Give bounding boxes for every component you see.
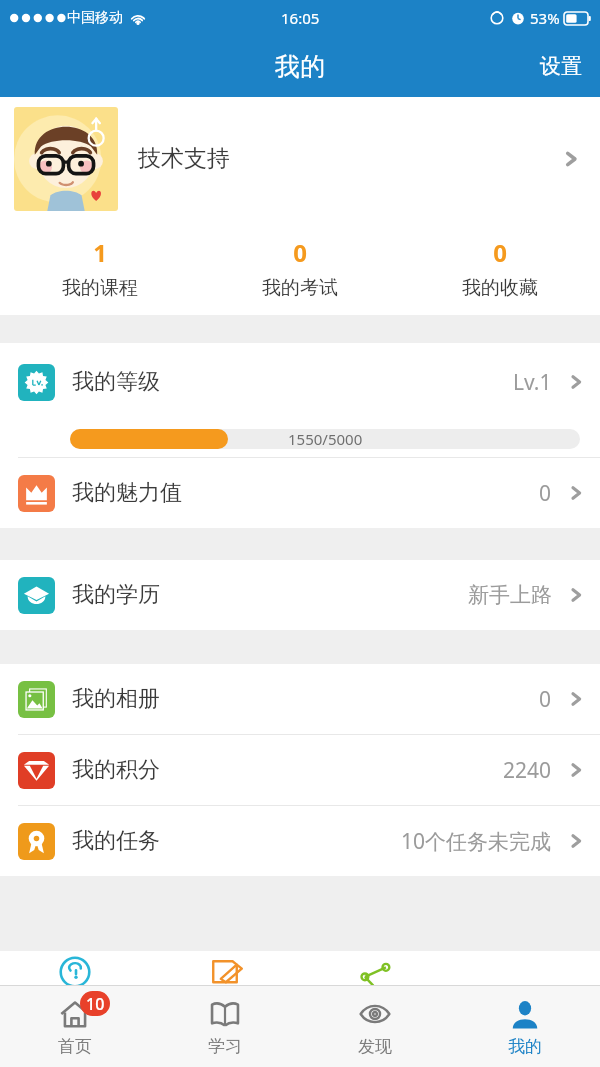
button[interactable]: 我的魅力值 (0, 458, 600, 528)
staticText: 我的收藏 (462, 276, 538, 300)
staticText: 10个任务未完成 (401, 827, 552, 856)
staticText: 我的积分 (72, 756, 160, 784)
button[interactable]: 设置 (522, 35, 600, 97)
button[interactable]: 1 (0, 220, 200, 315)
button[interactable]: 0 (400, 220, 600, 315)
staticText: 新手上路 (468, 582, 552, 608)
staticText: 我的 (275, 51, 325, 82)
staticText: Lv.1 (513, 368, 552, 397)
button[interactable]: 学习 (150, 986, 300, 1067)
staticText: 0 (293, 236, 307, 269)
button[interactable]: 我的等级 (0, 343, 600, 421)
staticText: 设置 (540, 53, 582, 79)
staticText: 中国移动 (67, 9, 123, 27)
staticText: 我的相册 (72, 685, 160, 713)
staticText: 16:05 (281, 8, 320, 28)
staticText: 技术支持 (138, 144, 230, 173)
staticText: 我的考试 (262, 276, 338, 300)
staticText: 我的课程 (62, 276, 138, 300)
staticText: 2240 (503, 756, 552, 785)
staticText: 发现 (358, 1036, 392, 1057)
staticText: 10 (86, 993, 105, 1015)
staticText: 首页 (58, 1036, 92, 1057)
button[interactable]: 我的 (450, 986, 600, 1067)
staticText: 学习 (208, 1036, 242, 1057)
staticText: 我的魅力值 (72, 479, 182, 507)
staticText: 0 (539, 479, 552, 508)
staticText: 我的 (508, 1036, 542, 1057)
staticText: 0 (493, 236, 507, 269)
button[interactable]: 10 (0, 986, 150, 1067)
staticText: 我的任务 (72, 827, 160, 855)
button[interactable]: 我的相册 (0, 664, 600, 734)
button[interactable]: 0 (200, 220, 400, 315)
staticText: 1 (93, 236, 107, 269)
button[interactable]: 我的学历 (0, 560, 600, 630)
staticText: 53% (530, 8, 560, 28)
staticText: 我的学历 (72, 581, 160, 609)
button[interactable]: 我的积分 (0, 735, 600, 805)
staticText: 我的等级 (72, 368, 160, 396)
staticText: 0 (539, 685, 552, 714)
button[interactable]: 发现 (300, 986, 450, 1067)
staticText: 1550/5000 (288, 429, 363, 449)
button[interactable]: 技术支持 (0, 97, 600, 220)
button[interactable]: 我的任务 (0, 806, 600, 876)
